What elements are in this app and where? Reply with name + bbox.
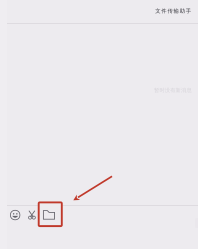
button[interactable]: Emoji bbox=[7, 207, 23, 223]
staticText: 暂时没有新消息 bbox=[154, 87, 191, 94]
button[interactable]: 文件传输助手 bbox=[152, 4, 194, 18]
button[interactable]: Screenshot bbox=[27, 209, 43, 225]
button[interactable]: Send file bbox=[39, 202, 62, 226]
staticText: 文件传输助手 bbox=[155, 8, 191, 14]
